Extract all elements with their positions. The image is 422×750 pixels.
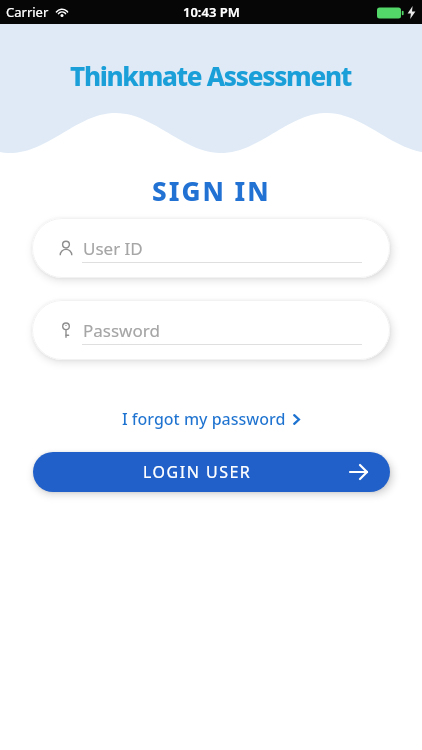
button[interactable]: Password (32, 300, 390, 360)
staticText: 10:43 PM (183, 3, 240, 21)
button[interactable]: User ID (32, 218, 390, 278)
button[interactable]: I forgot my password (118, 404, 304, 434)
staticText: LOGIN USER (143, 461, 252, 483)
staticText: Password (83, 319, 160, 342)
button[interactable]: LOGIN USER (33, 452, 390, 492)
staticText: Thinkmate Assessment (70, 58, 352, 93)
staticText: I forgot my password (122, 408, 286, 430)
staticText: SIGN IN (152, 173, 271, 208)
staticText: User ID (83, 237, 143, 260)
staticText: Carrier (6, 3, 49, 21)
